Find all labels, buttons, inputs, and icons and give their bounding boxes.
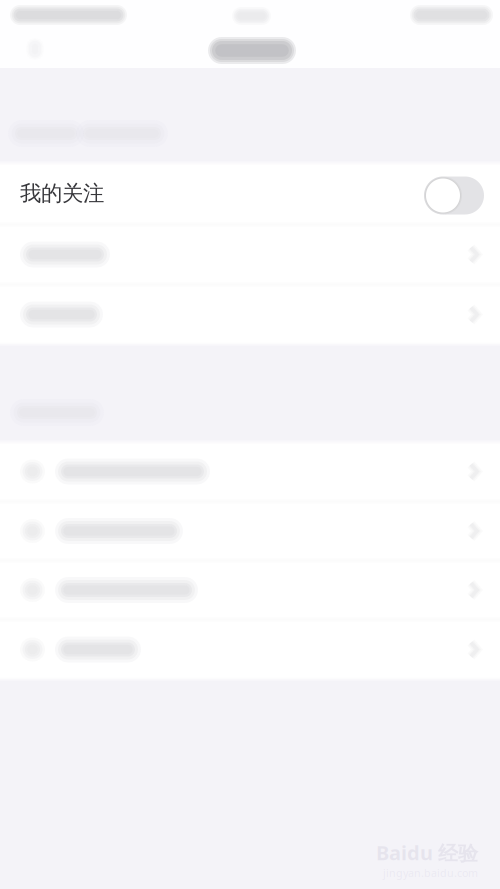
- button[interactable]: Setting: [0, 227, 500, 282]
- button[interactable]: Setting: [0, 504, 500, 558]
- button[interactable]: Setting: [0, 563, 500, 617]
- staticText: 我的关注: [20, 180, 104, 207]
- staticText: Baidu 经验: [376, 839, 478, 866]
- button[interactable]: Setting: [0, 622, 500, 677]
- button[interactable]: 我的关注: [0, 165, 500, 222]
- button[interactable]: Setting: [0, 444, 500, 499]
- button[interactable]: Setting: [0, 287, 500, 342]
